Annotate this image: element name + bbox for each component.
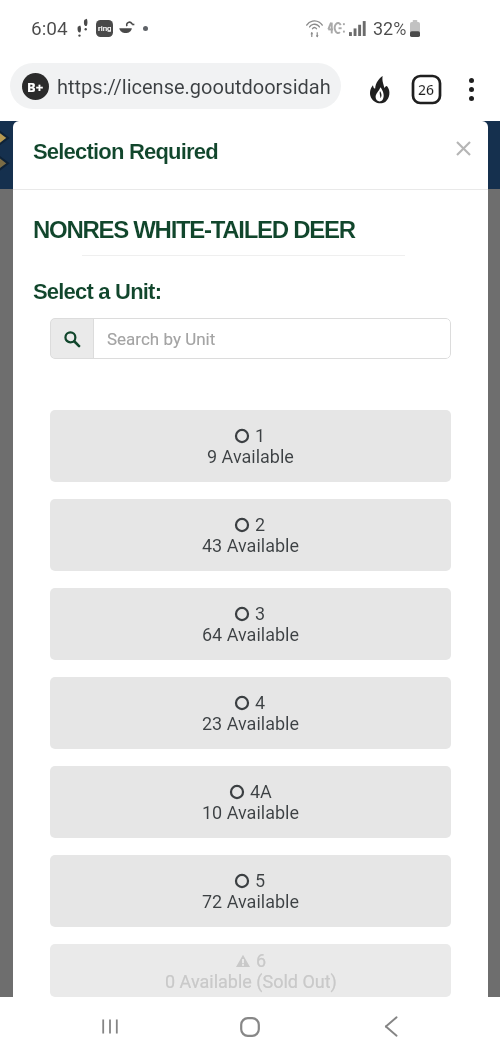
button[interactable]: 3 xyxy=(50,588,451,660)
button[interactable]: Back xyxy=(360,997,422,1056)
staticText: 1 xyxy=(255,425,266,446)
staticText: 43 Available xyxy=(202,535,299,556)
staticText: 6:04 xyxy=(31,17,68,39)
button[interactable]: Close xyxy=(454,139,472,157)
staticText: ring xyxy=(98,24,112,33)
staticText: 32% xyxy=(373,18,407,39)
staticText: 4 xyxy=(255,692,266,713)
button[interactable]: 4A xyxy=(50,766,451,838)
staticText: Search by Unit xyxy=(107,329,216,349)
staticText: https://license.gooutdoorsidah xyxy=(57,75,331,98)
button[interactable]: Search by Unit xyxy=(50,318,451,359)
button[interactable]: Recents xyxy=(79,997,141,1056)
button[interactable]: Home xyxy=(219,997,281,1056)
staticText: 72 Available xyxy=(202,891,299,912)
staticText: 26 xyxy=(418,80,435,99)
staticText: Selection Required xyxy=(33,139,218,164)
staticText: B+ xyxy=(27,78,44,96)
staticText: 23 Available xyxy=(202,713,299,734)
staticText: NONRES WHITE-TAILED DEER xyxy=(33,216,355,243)
button[interactable]: Brave Shields xyxy=(362,71,398,107)
staticText: 4A xyxy=(250,781,272,802)
staticText: Select a Unit: xyxy=(33,279,162,304)
button[interactable]: 6 xyxy=(50,944,451,997)
staticText: 2 xyxy=(255,514,266,535)
button[interactable]: B+ xyxy=(10,63,341,109)
button[interactable]: 2 xyxy=(50,499,451,571)
button[interactable]: Tabs xyxy=(408,71,444,107)
button[interactable]: More options xyxy=(456,74,486,104)
button[interactable]: 1 xyxy=(50,410,451,482)
staticText: 0 Available (Sold Out) xyxy=(165,971,337,992)
button[interactable]: 5 xyxy=(50,855,451,927)
staticText: 9 Available xyxy=(207,446,294,467)
staticText: 10 Available xyxy=(202,802,299,823)
staticText: 64 Available xyxy=(202,624,299,645)
staticText: 5 xyxy=(255,870,266,891)
staticText: 3 xyxy=(255,603,266,624)
staticText: 6 xyxy=(256,950,267,971)
button[interactable]: 4 xyxy=(50,677,451,749)
